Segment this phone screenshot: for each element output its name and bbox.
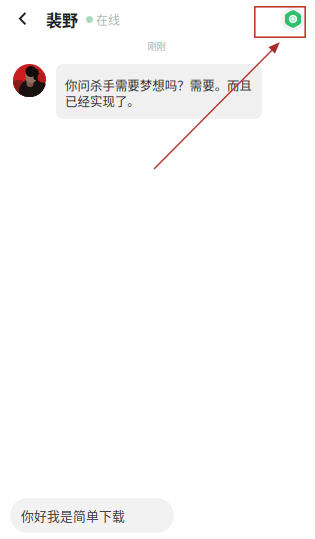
button[interactable]: 你好我是简单下载	[10, 498, 174, 533]
button[interactable]: Back	[9, 4, 37, 34]
staticText: 裴野	[46, 8, 78, 31]
staticText: 在线	[96, 11, 120, 28]
staticText: 刚刚	[147, 39, 165, 52]
staticText: 你问杀手需要梦想吗？需要。而且已经实现了。	[65, 76, 252, 110]
button[interactable]: Group settings	[281, 7, 305, 31]
staticText: 你好我是简单下载	[21, 506, 125, 525]
